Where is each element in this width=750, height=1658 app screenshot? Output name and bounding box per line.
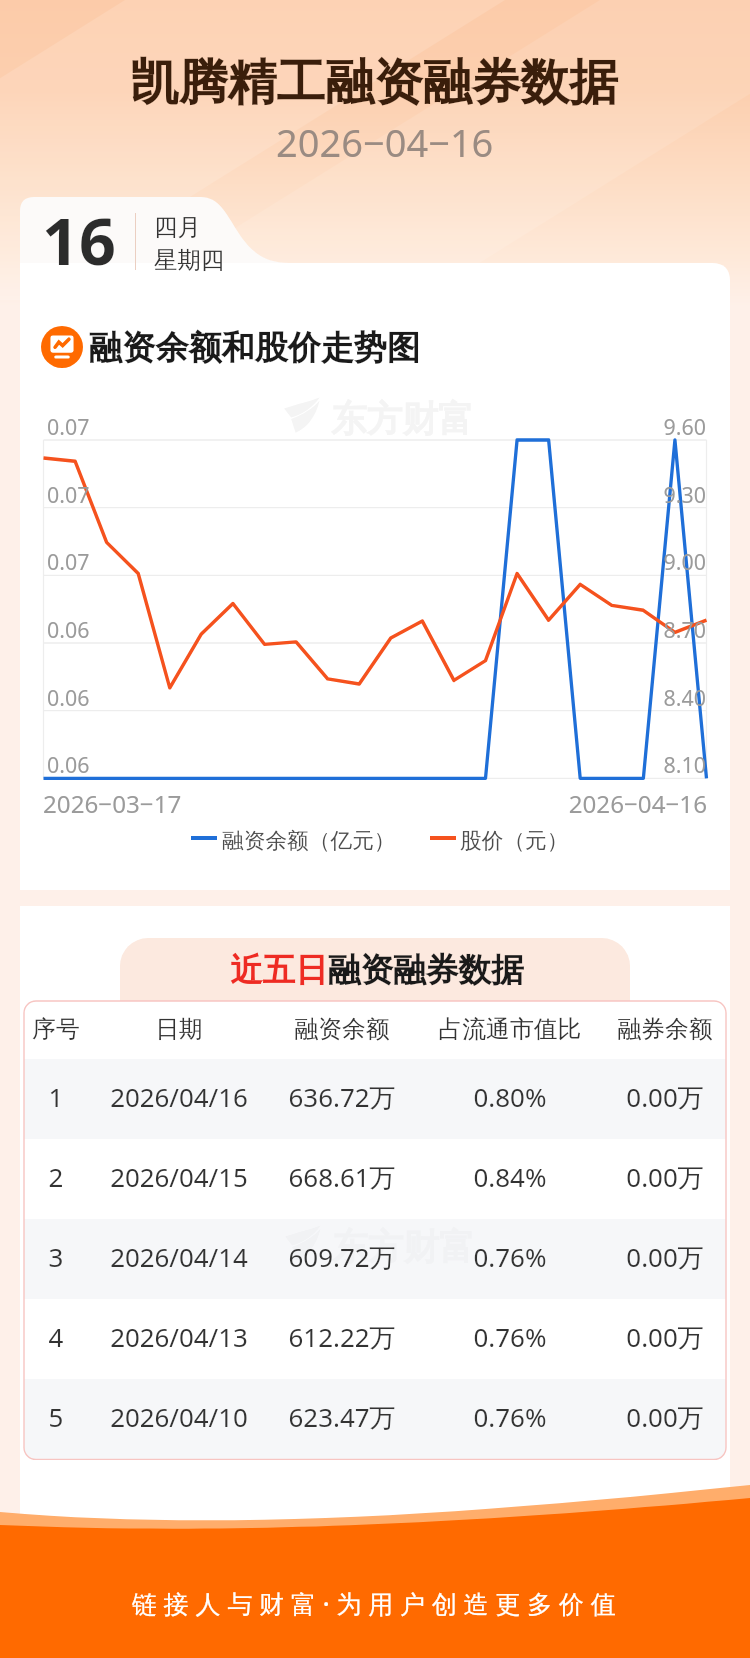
staticText: 融资余额和股价走势图	[89, 327, 420, 369]
staticText: 2026/04/15	[89, 1159, 269, 1194]
staticText: 0.00万	[575, 1079, 726, 1114]
staticText: 3	[24, 1239, 91, 1274]
staticText: 0.76%	[410, 1239, 610, 1274]
staticText: 0.07	[47, 412, 90, 441]
staticText: 0.80%	[410, 1079, 610, 1114]
staticText: 星期四	[154, 245, 225, 274]
staticText: 0.00万	[575, 1319, 726, 1354]
staticText: 四月	[154, 212, 201, 241]
staticText: 2026/04/10	[89, 1399, 269, 1434]
staticText: 0.76%	[410, 1399, 610, 1434]
staticText: 8.10	[600, 750, 706, 779]
staticText: 0.06	[47, 615, 90, 644]
staticText: 0.00万	[575, 1399, 726, 1434]
staticText: 2026/04/13	[89, 1319, 269, 1354]
staticText: 1	[24, 1079, 91, 1114]
staticText: 日期	[89, 1014, 269, 1044]
staticText: 0.00万	[575, 1239, 726, 1274]
staticText: 9.30	[600, 480, 706, 509]
staticText: 0.06	[47, 750, 90, 779]
staticText: 0.07	[47, 547, 90, 576]
staticText: 0.84%	[410, 1159, 610, 1194]
staticText: 2	[24, 1159, 91, 1194]
staticText: 0.76%	[410, 1319, 610, 1354]
staticText: 9.60	[600, 412, 706, 441]
staticText: 凯腾精工融资融券数据	[130, 52, 618, 113]
staticText: 2026−04−16	[520, 787, 707, 820]
staticText: 0.07	[47, 480, 90, 509]
staticText: 股价（元）	[460, 827, 569, 854]
staticText: 0.06	[47, 683, 90, 712]
staticText: 2026/04/16	[89, 1079, 269, 1114]
staticText: 2026−04−16	[276, 116, 494, 168]
staticText: 668.61万	[252, 1159, 432, 1194]
staticText: 0.00万	[575, 1159, 726, 1194]
staticText: 融资融券数据	[328, 950, 524, 991]
staticText: 8.70	[600, 615, 706, 644]
staticText: 2026/04/14	[89, 1239, 269, 1274]
staticText: 融券余额	[575, 1014, 726, 1044]
staticText: 636.72万	[252, 1079, 432, 1114]
staticText: 东方财富	[331, 397, 474, 442]
staticText: 融资余额	[252, 1014, 432, 1044]
staticText: 8.40	[600, 683, 706, 712]
staticText: 4	[24, 1319, 91, 1354]
staticText: 融资余额（亿元）	[222, 827, 396, 854]
staticText: 近五日	[230, 950, 328, 991]
staticText: 5	[24, 1399, 91, 1434]
staticText: 609.72万	[252, 1239, 432, 1274]
staticText: 2026−03−17	[43, 787, 182, 820]
staticText: 623.47万	[252, 1399, 432, 1434]
staticText: 东方财富	[332, 1225, 475, 1270]
staticText: 612.22万	[252, 1319, 432, 1354]
staticText: 序号	[24, 1014, 91, 1044]
staticText: 9.00	[600, 547, 706, 576]
staticText: 16	[42, 196, 116, 284]
staticText: 占流通市值比	[410, 1014, 610, 1044]
staticText: 链接人与财富·为用户创造更多价值	[132, 1586, 623, 1620]
